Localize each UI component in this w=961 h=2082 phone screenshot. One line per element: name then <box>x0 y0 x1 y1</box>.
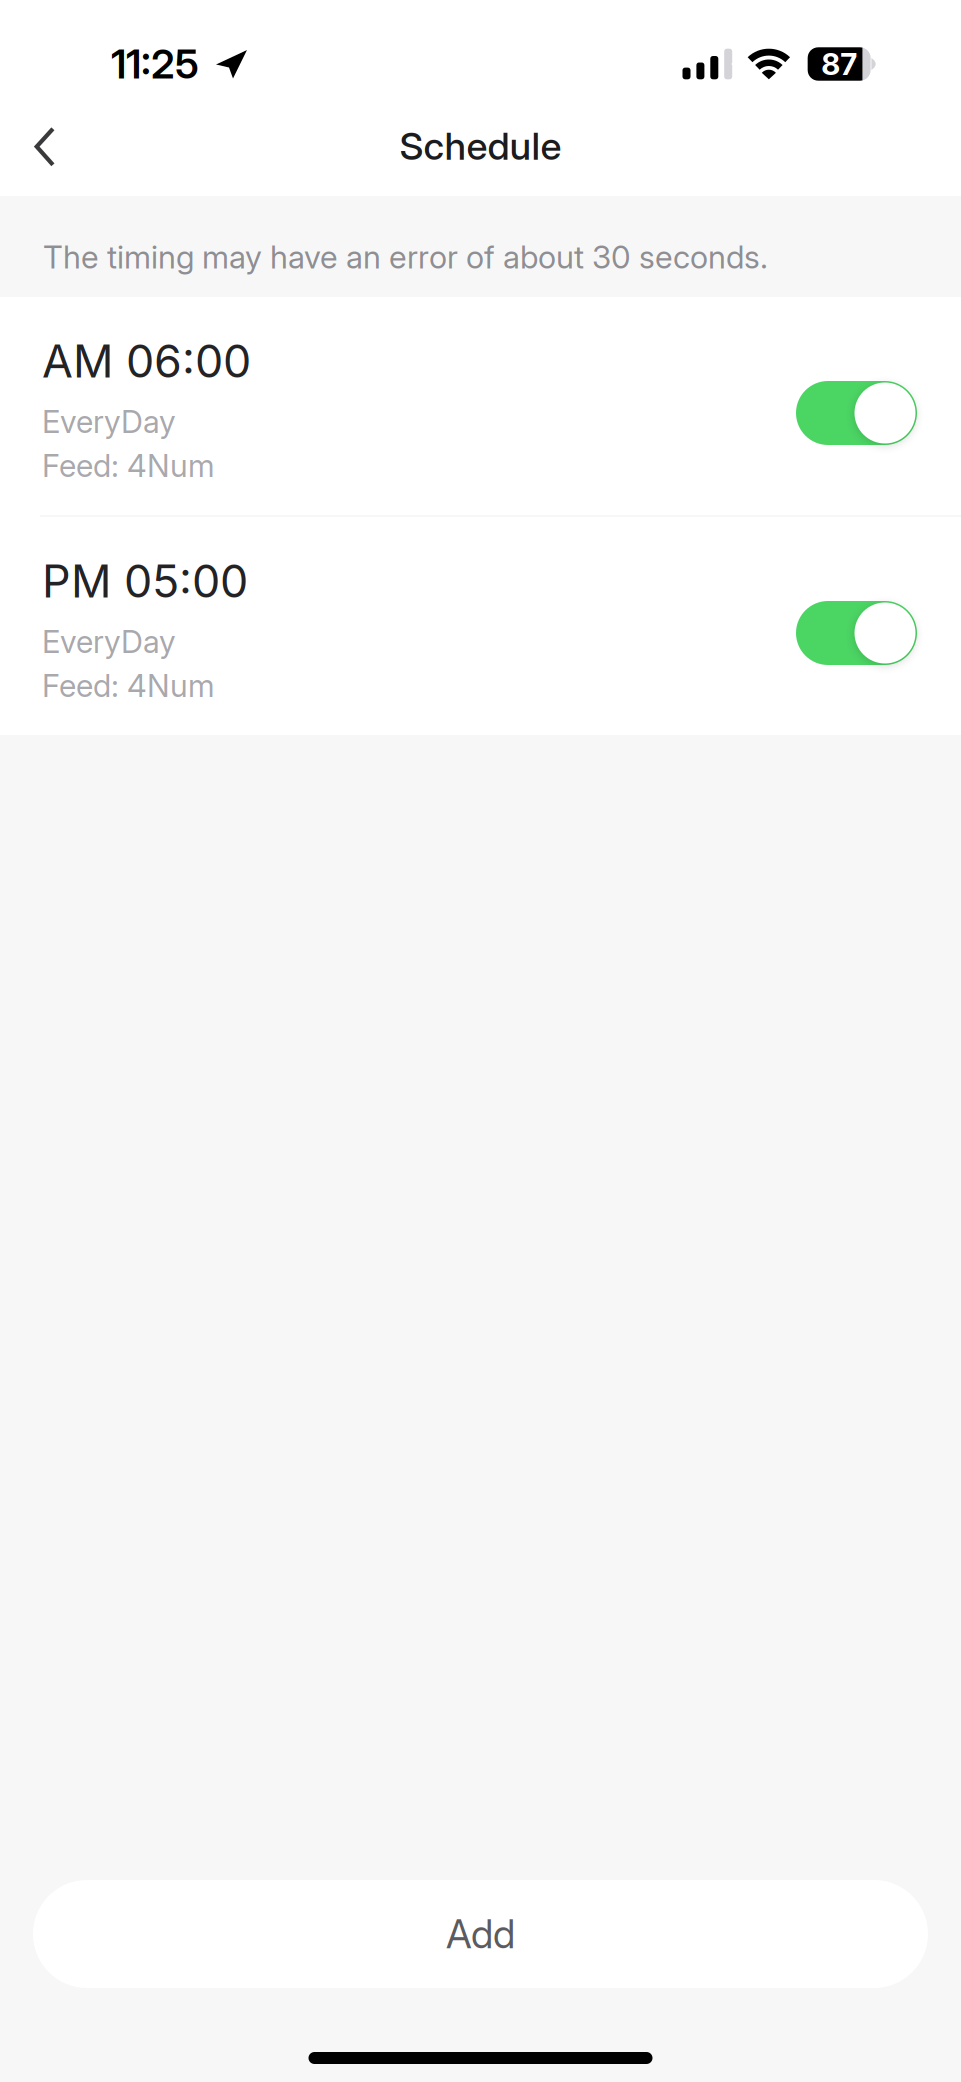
staticText: Feed: 4Num <box>42 447 215 484</box>
button[interactable]: Back <box>0 108 78 196</box>
button[interactable]: PM 05:00 <box>0 517 961 735</box>
staticText: AM 06:00 <box>42 334 251 388</box>
staticText: EveryDay <box>42 623 176 660</box>
staticText: 87 <box>821 46 857 82</box>
button[interactable]: Add <box>33 1880 928 1988</box>
button[interactable]: AM 06:00 <box>0 297 961 515</box>
staticText: Add <box>446 1910 515 1957</box>
staticText: PM 05:00 <box>42 554 248 608</box>
staticText: Feed: 4Num <box>42 667 215 704</box>
staticText: 11:25 <box>111 40 199 88</box>
staticText: The timing may have an error of about 30… <box>43 238 768 276</box>
staticText: Schedule <box>399 123 561 169</box>
staticText: EveryDay <box>42 403 176 440</box>
